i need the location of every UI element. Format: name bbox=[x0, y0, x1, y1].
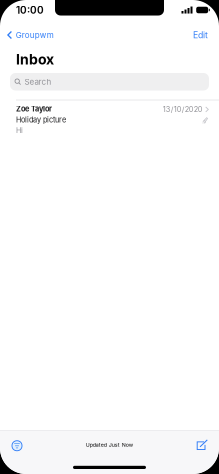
staticText: Updated Just Now bbox=[86, 441, 133, 448]
staticText: 10:00 bbox=[16, 4, 44, 16]
button[interactable]: Groupwm bbox=[0, 27, 60, 43]
button[interactable]: Search bbox=[0, 73, 219, 90]
button[interactable]: Edit bbox=[185, 27, 219, 43]
staticText: Zoe Taylor bbox=[16, 104, 52, 113]
staticText: Search bbox=[25, 77, 52, 87]
staticText: Hi bbox=[16, 126, 23, 135]
button[interactable]: Zoe Taylor bbox=[0, 100, 219, 140]
staticText: Groupwm bbox=[16, 30, 54, 40]
staticText: 13/10/2020 bbox=[163, 105, 203, 114]
staticText: Edit bbox=[193, 30, 208, 40]
button[interactable]: Filter bbox=[0, 431, 28, 454]
staticText: Inbox bbox=[16, 51, 54, 68]
button[interactable]: Compose bbox=[190, 431, 219, 454]
staticText: Holiday picture bbox=[16, 115, 66, 124]
